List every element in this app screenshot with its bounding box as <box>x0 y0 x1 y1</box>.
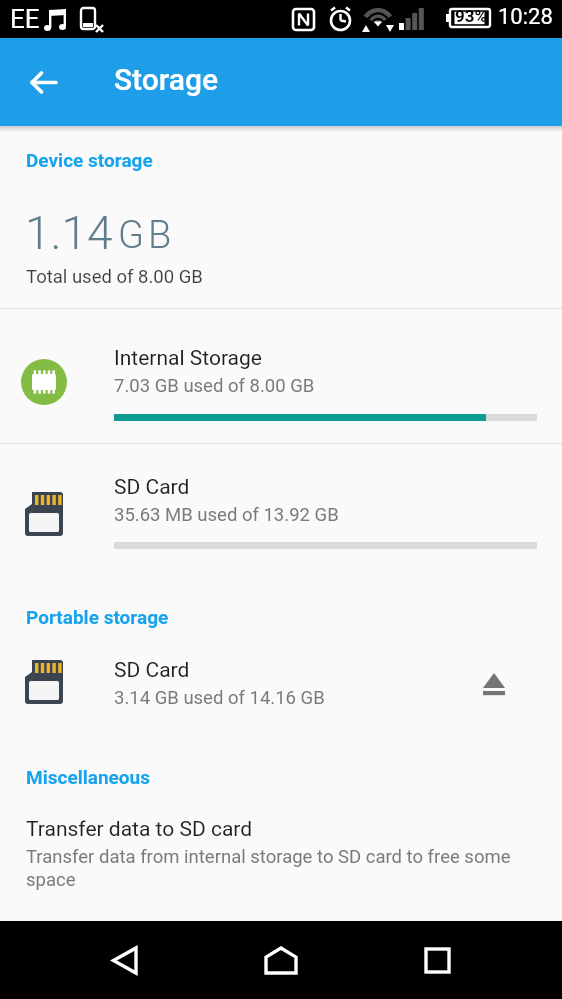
staticText: Total used of 8.00 GB <box>26 266 203 288</box>
staticText: 93% <box>455 6 488 26</box>
staticText: 1.14 <box>25 206 113 260</box>
staticText: SD Card <box>114 658 190 683</box>
staticText: Transfer data from internal storage to S… <box>26 846 546 890</box>
button[interactable] <box>16 54 72 110</box>
staticText: Portable storage <box>26 606 169 628</box>
staticText: EE <box>10 4 40 34</box>
button[interactable]: SD Card <box>0 636 562 748</box>
staticText: Miscellaneous <box>26 766 150 788</box>
button[interactable]: Internal Storage <box>0 309 562 443</box>
staticText: Transfer data to SD card <box>26 817 253 842</box>
staticText: Internal Storage <box>114 346 262 371</box>
staticText: Storage <box>114 62 219 97</box>
staticText: 7.03 GB used of 8.00 GB <box>114 375 315 397</box>
button[interactable]: SD Card <box>0 444 562 576</box>
button[interactable]: Transfer data to SD card <box>0 810 562 905</box>
button[interactable] <box>95 930 155 990</box>
staticText: GB <box>118 213 176 258</box>
staticText: 3.14 GB used of 14.16 GB <box>114 687 325 709</box>
button[interactable] <box>470 660 518 708</box>
button[interactable] <box>407 930 467 990</box>
staticText: 10:28 <box>498 4 553 30</box>
staticText: Device storage <box>26 149 153 171</box>
button[interactable] <box>251 930 311 990</box>
staticText: 35.63 MB used of 13.92 GB <box>114 504 339 526</box>
staticText: SD Card <box>114 475 190 500</box>
